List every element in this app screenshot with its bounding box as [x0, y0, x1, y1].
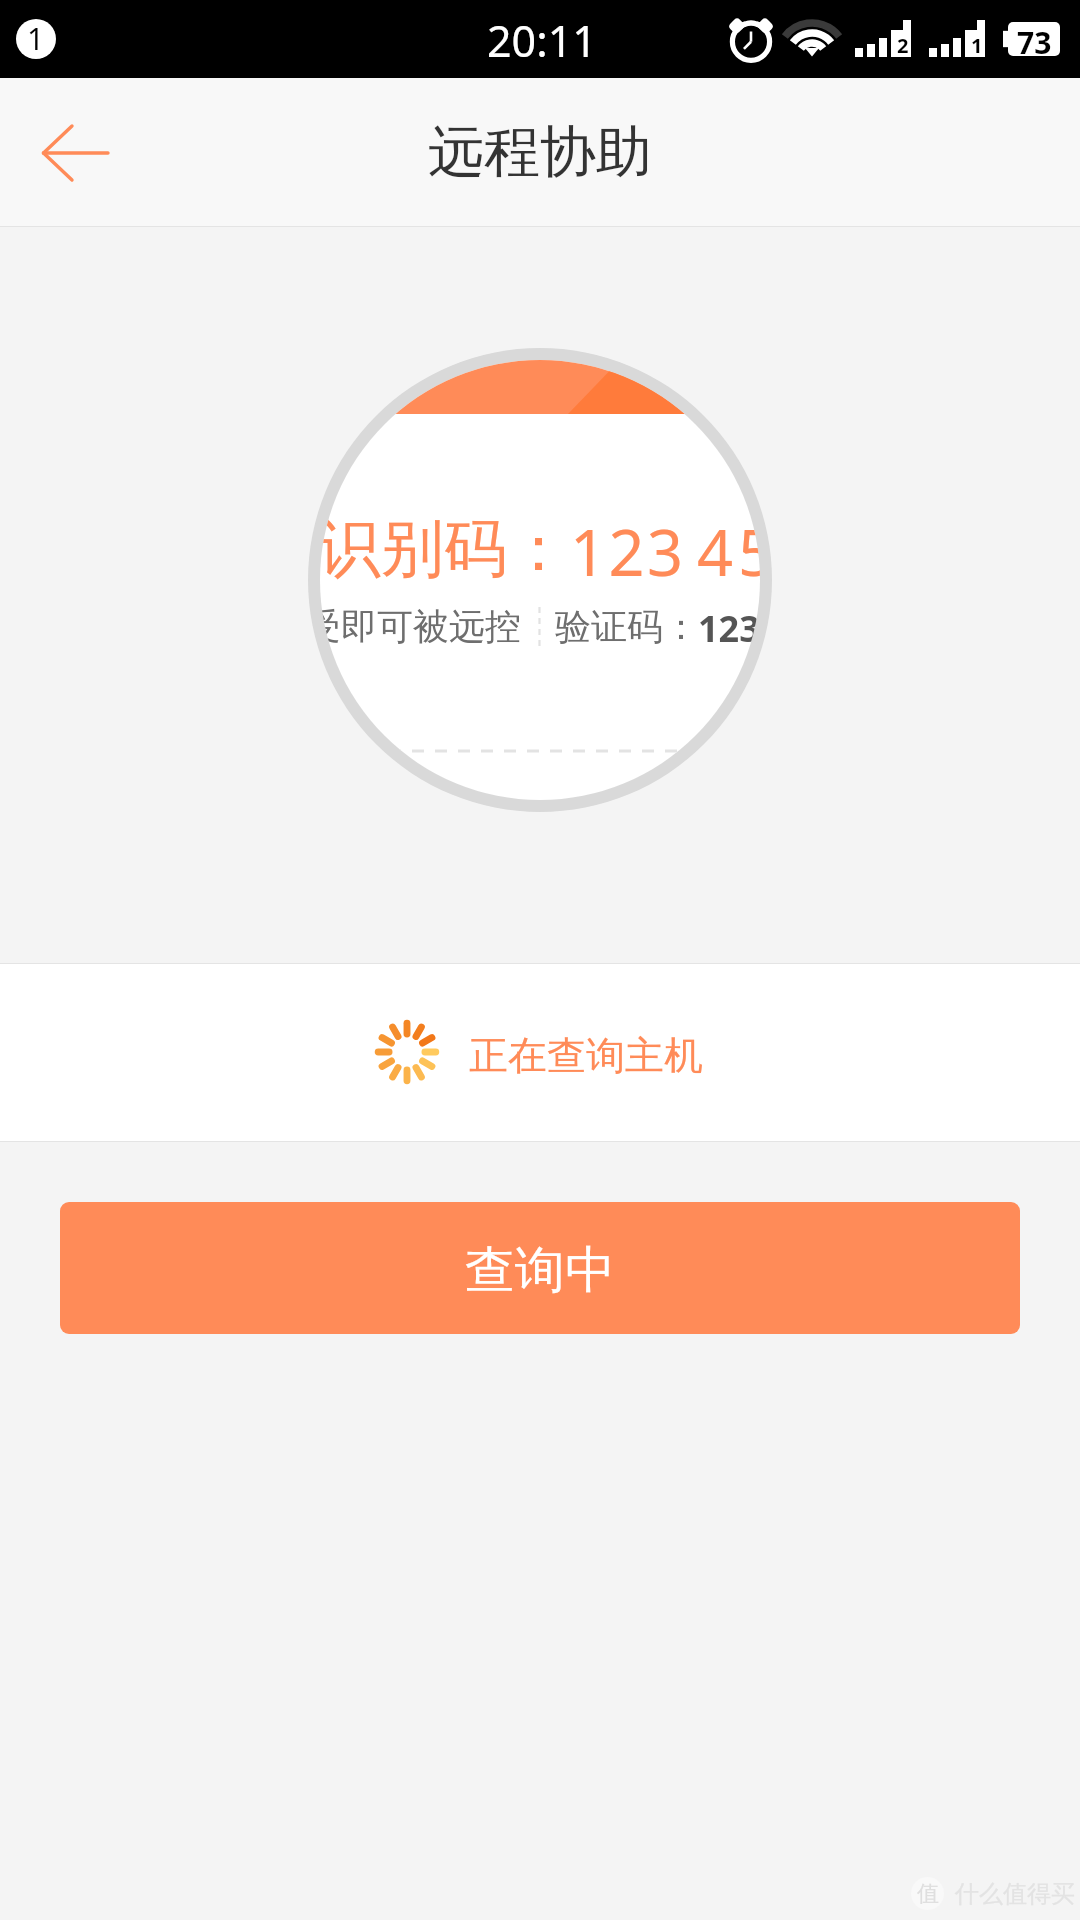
staticText: 什么值得买	[955, 1879, 1075, 1909]
staticText: 1	[27, 19, 45, 58]
staticText: 123456	[698, 604, 760, 653]
staticText: 验证码：	[555, 604, 699, 649]
staticText: 远程协助	[428, 117, 652, 188]
staticText: 73	[1017, 22, 1052, 56]
button[interactable]: Back	[0, 78, 150, 227]
staticText: 1	[971, 32, 983, 59]
staticText: 值	[917, 1880, 939, 1908]
staticText: 2	[897, 32, 909, 59]
button[interactable]: 查询中	[60, 1202, 1020, 1334]
staticText: 正在查询主机	[469, 1031, 703, 1080]
staticText: 查询中	[465, 1239, 615, 1302]
staticText: 456	[697, 509, 760, 595]
staticText: 20:11	[487, 11, 597, 70]
staticText: 识别码：	[320, 509, 570, 588]
staticText: 受即可被远控	[320, 604, 521, 649]
staticText: 123	[570, 509, 686, 595]
